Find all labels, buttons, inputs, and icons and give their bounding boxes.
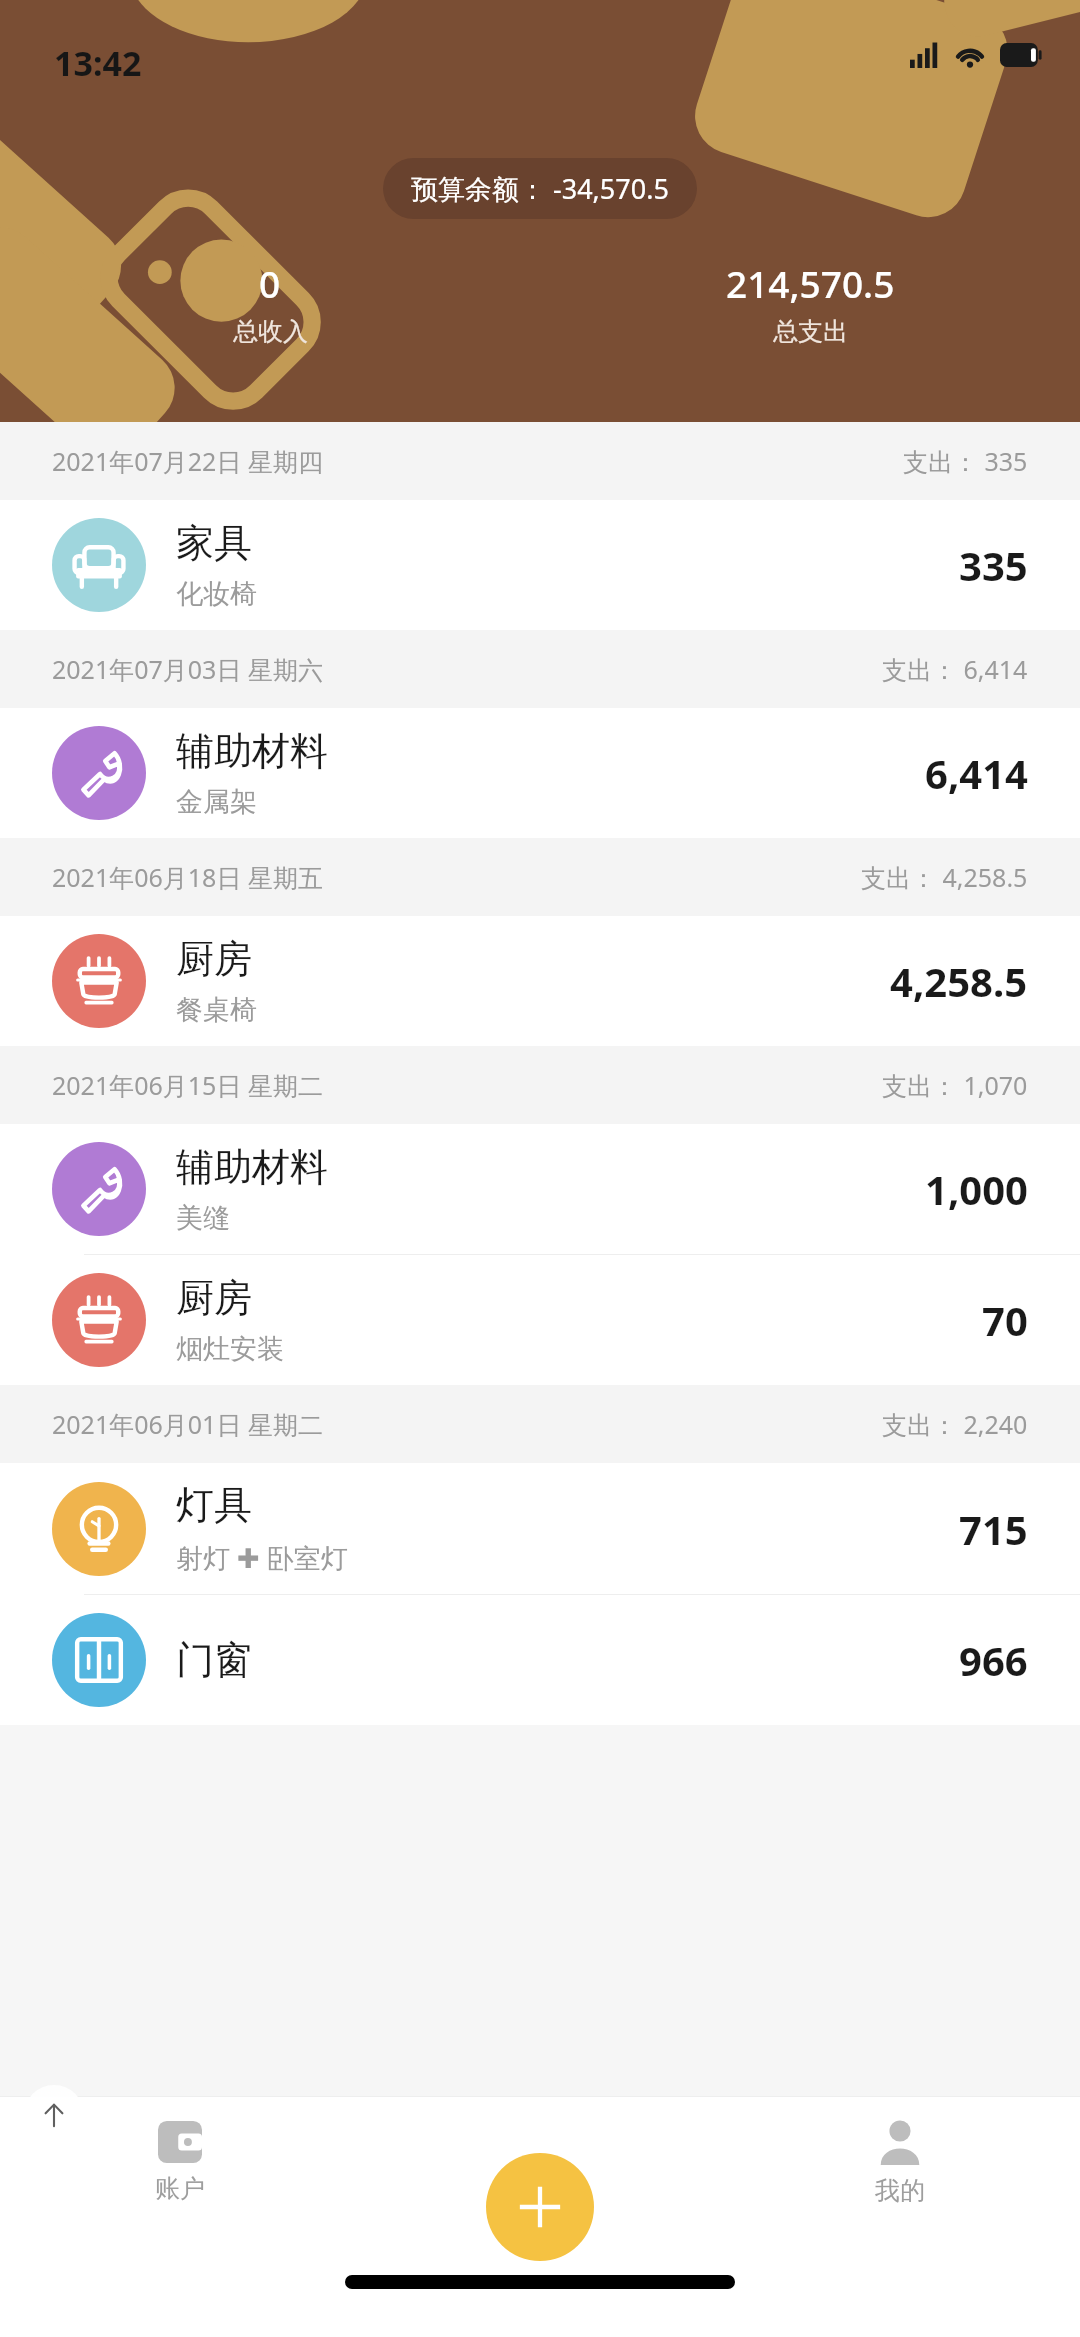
button[interactable]: Add record [486, 2153, 594, 2261]
staticText: 化妆椅 [176, 577, 257, 611]
staticText: 灯具 [176, 1481, 252, 1529]
button[interactable]: 门窗 [0, 1595, 1080, 1725]
staticText: 我的 [875, 2175, 925, 2206]
button[interactable]: 214,570.5 [540, 258, 1080, 347]
staticText: 支出： 1,070 [882, 1068, 1028, 1102]
staticText: 预算余额： -34,570.5 [411, 170, 669, 207]
staticText: 13:42 [54, 40, 142, 86]
staticText: 总支出 [773, 316, 848, 347]
staticText: 烟灶安装 [176, 1332, 284, 1366]
staticText: 966 [959, 1633, 1028, 1687]
staticText: 支出： 4,258.5 [861, 860, 1028, 894]
staticText: 支出： 6,414 [882, 652, 1028, 686]
staticText: 金属架 [176, 785, 257, 819]
staticText: 餐桌椅 [176, 993, 257, 1027]
staticText: 2021年06月01日 星期二 [52, 1407, 323, 1441]
staticText: 2021年07月22日 星期四 [52, 444, 323, 478]
staticText: 美缝 [176, 1201, 230, 1235]
button[interactable]: Scroll to top [24, 2085, 84, 2145]
staticText: 辅助材料 [176, 727, 328, 775]
button[interactable]: 预算余额： -34,570.5 [383, 158, 697, 219]
staticText: 715 [959, 1502, 1028, 1556]
staticText: 厨房 [176, 935, 252, 983]
staticText: 70 [982, 1293, 1028, 1347]
staticText: 家具 [176, 519, 252, 567]
staticText: 6,414 [925, 746, 1028, 800]
staticText: 支出： 335 [903, 444, 1028, 478]
staticText: 账户 [155, 2173, 205, 2204]
staticText: 214,570.5 [726, 258, 895, 308]
staticText: 门窗 [176, 1636, 252, 1684]
staticText: 0 [259, 258, 281, 308]
button[interactable]: 账户 [0, 2097, 360, 2227]
staticText: 2021年07月03日 星期六 [52, 652, 323, 686]
staticText: 厨房 [176, 1274, 252, 1322]
staticText: 支出： 2,240 [882, 1407, 1028, 1441]
button[interactable]: 我的 [720, 2097, 1080, 2227]
button[interactable]: 家具 [0, 500, 1080, 630]
staticText: 射灯 ✚ 卧室灯 [176, 1539, 348, 1576]
staticText: 2021年06月18日 星期五 [52, 860, 323, 894]
staticText: 335 [959, 538, 1028, 592]
staticText: 辅助材料 [176, 1143, 328, 1191]
button[interactable]: 厨房 [0, 916, 1080, 1046]
button[interactable]: 辅助材料 [0, 708, 1080, 838]
staticText: 总收入 [233, 316, 308, 347]
staticText: 4,258.5 [890, 954, 1028, 1008]
button[interactable]: 辅助材料 [0, 1124, 1080, 1254]
button[interactable]: 0 [0, 258, 540, 347]
staticText: 2021年06月15日 星期二 [52, 1068, 323, 1102]
button[interactable]: 厨房 [0, 1255, 1080, 1385]
staticText: 1,000 [925, 1162, 1028, 1216]
button[interactable]: 灯具 [0, 1463, 1080, 1594]
